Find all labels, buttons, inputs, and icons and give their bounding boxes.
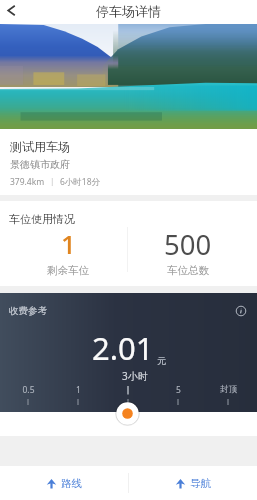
staticText: 379.4km — [10, 176, 45, 188]
staticText: 封顶 — [220, 384, 237, 395]
staticText: 3小时 — [122, 369, 148, 383]
staticText: 收费参考 — [9, 305, 47, 317]
staticText: 车位总数 — [167, 264, 209, 277]
staticText: 景德镇市政府 — [10, 158, 70, 171]
button[interactable]: Back — [0, 1, 22, 23]
staticText: 500 — [164, 226, 212, 263]
staticText: 1 — [76, 384, 81, 396]
staticText: 测试用车场 — [10, 139, 70, 154]
staticText: 丨 — [48, 177, 57, 188]
staticText: 2.01 — [92, 327, 154, 369]
button[interactable]: Info — [235, 305, 247, 317]
staticText: 5 — [176, 384, 181, 396]
staticText: 0.5 — [22, 384, 35, 396]
staticText: 车位使用情况 — [9, 212, 75, 226]
staticText: 剩余车位 — [47, 264, 89, 277]
button[interactable]: 导航 — [128, 466, 257, 500]
staticText: 路线 — [61, 477, 82, 490]
staticText: 元 — [157, 355, 166, 366]
staticText: 停车场详情 — [96, 3, 161, 19]
staticText: 1 — [61, 226, 76, 261]
staticText: 6小时18分 — [60, 176, 101, 188]
button[interactable]: 路线 — [0, 466, 128, 500]
staticText: 导航 — [190, 477, 211, 490]
